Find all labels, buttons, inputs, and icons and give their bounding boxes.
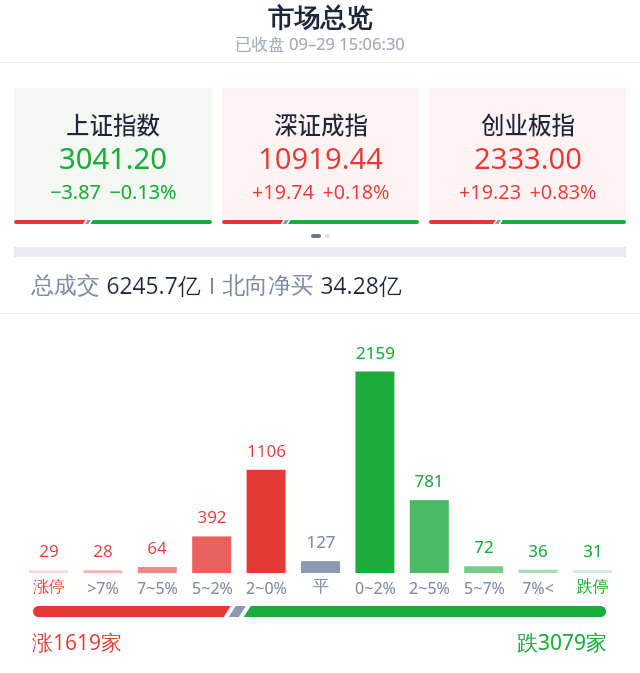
staticText: 781	[414, 469, 444, 492]
staticText: 涨停	[33, 577, 65, 597]
staticText: 上证指数	[66, 107, 160, 141]
staticText: 392	[197, 505, 227, 528]
staticText: 28	[93, 539, 113, 562]
staticText: >7%	[87, 577, 119, 599]
staticText: 7~5%	[137, 577, 178, 599]
button[interactable]: 深证成指	[222, 88, 419, 224]
staticText: +19.23	[459, 178, 521, 205]
staticText: 1106	[247, 439, 286, 462]
staticText: 0~2%	[355, 577, 396, 599]
staticText: 平	[313, 577, 329, 597]
staticText: 北向净买	[222, 271, 314, 300]
staticText: 10919.44	[258, 138, 383, 178]
staticText: 127	[306, 530, 336, 553]
staticText: 31	[583, 539, 603, 562]
staticText: 跌3079家	[516, 628, 607, 657]
staticText: 深证成指	[274, 107, 368, 141]
staticText: 64	[147, 536, 167, 559]
staticText: −0.13%	[109, 178, 177, 205]
staticText: 2333.00	[474, 138, 582, 178]
button[interactable]: 创业板指	[429, 88, 626, 224]
staticText: +19.74	[252, 178, 314, 205]
staticText: 2~5%	[409, 577, 450, 599]
staticText: 2~0%	[246, 577, 287, 599]
button[interactable]: 上证指数	[14, 88, 212, 224]
staticText: 7%<	[522, 577, 554, 599]
staticText: 34.28亿	[320, 270, 402, 301]
staticText: 创业板指	[481, 107, 575, 141]
staticText: 已收盘 09–29 15:06:30	[235, 32, 405, 55]
staticText: 36	[528, 539, 548, 562]
staticText: 5~2%	[192, 577, 233, 599]
staticText: 29	[39, 539, 59, 562]
staticText: 涨1619家	[32, 628, 123, 657]
staticText: 市场总览	[268, 2, 372, 35]
staticText: +0.83%	[529, 178, 597, 205]
staticText: 5~7%	[464, 577, 505, 599]
staticText: 6245.7亿	[106, 270, 201, 301]
staticText: 3041.20	[59, 138, 167, 178]
staticText: +0.18%	[322, 178, 390, 205]
staticText: 总成交	[31, 271, 100, 300]
staticText: 72	[474, 535, 494, 558]
staticText: 跌停	[577, 577, 609, 597]
staticText: 2159	[356, 341, 395, 364]
staticText: −3.87	[50, 178, 101, 205]
